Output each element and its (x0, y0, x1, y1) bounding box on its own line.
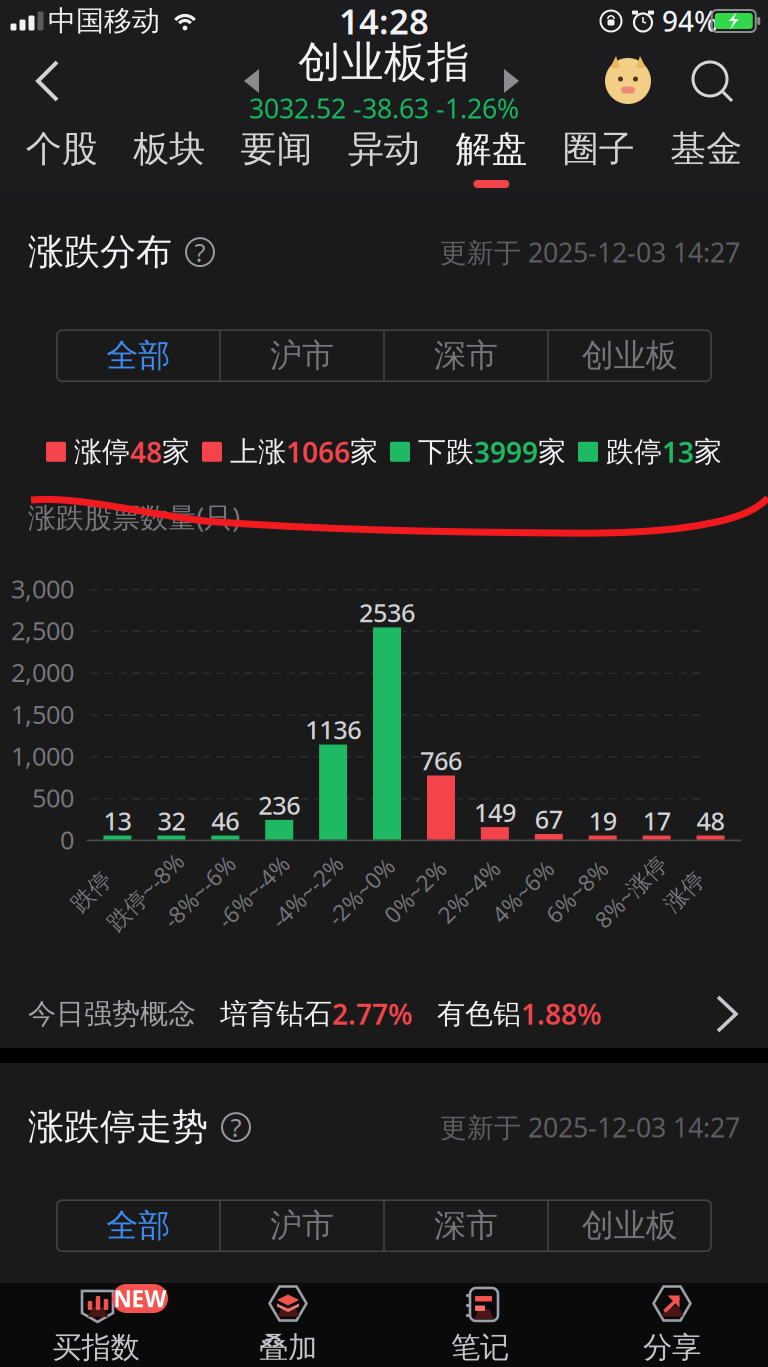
button[interactable]: 创业板 (549, 1200, 711, 1251)
staticText: 创业板 (582, 336, 678, 375)
staticText: 跌停 (68, 878, 114, 905)
staticText: 48 (130, 433, 162, 470)
staticText: 更新于 2025-12-03 14:27 (440, 234, 740, 270)
button[interactable]: NEW (0, 1283, 192, 1367)
staticText: 笔记 (451, 1329, 509, 1365)
staticText: 家 (162, 435, 190, 469)
staticText: -2%~0% (319, 876, 403, 907)
staticText: 67 (535, 802, 563, 836)
staticText: 13 (103, 804, 131, 837)
button[interactable]: 沪市 (221, 330, 383, 381)
button[interactable]: 返回 (8, 42, 86, 120)
staticText: 个股 (26, 127, 98, 171)
staticText: 下跌 (418, 435, 474, 469)
staticText: 异动 (348, 127, 420, 171)
staticText: 买指数 (52, 1329, 139, 1365)
staticText: 板块 (133, 127, 205, 171)
staticText: 上涨 (230, 435, 286, 469)
staticText: 家 (538, 435, 566, 469)
staticText: 基金 (670, 127, 742, 171)
staticText: 766 (420, 744, 462, 777)
staticText: 17 (643, 804, 671, 837)
button[interactable]: 深市 (385, 330, 547, 381)
staticText: ? (194, 235, 205, 269)
staticText: 圈子 (563, 127, 635, 171)
staticText: 1,000 (11, 739, 74, 773)
staticText: 19 (589, 804, 617, 837)
staticText: 家 (350, 435, 378, 469)
staticText: 8%~涨停 (585, 876, 676, 907)
button[interactable]: 叠加 (192, 1283, 384, 1367)
staticText: 深市 (434, 1206, 498, 1245)
staticText: 1136 (305, 713, 361, 746)
staticText: 深市 (434, 336, 498, 375)
staticText: 32 (157, 804, 185, 837)
staticText: 跌停 (606, 435, 662, 469)
staticText: -4%~-2% (262, 876, 353, 907)
staticText: 家 (694, 435, 722, 469)
staticText: 3032.52 -38.63 -1.26% (249, 90, 519, 126)
button[interactable]: 要闻 (223, 120, 330, 196)
staticText: 涨停 (661, 878, 707, 905)
staticText: 6%~8% (538, 876, 615, 907)
button[interactable]: 全部 (57, 1200, 219, 1251)
staticText: 13 (662, 433, 694, 470)
button[interactable]: 全部 (57, 330, 219, 381)
staticText: 3,000 (11, 572, 74, 605)
staticText: 48 (696, 804, 724, 837)
staticText: 0%~2% (376, 876, 453, 907)
staticText: 涨跌停走势 (28, 1105, 208, 1149)
staticText: 涨跌股票数量(只) (28, 498, 240, 536)
staticText: 2%~4% (430, 876, 507, 907)
staticText: 149 (474, 795, 516, 829)
button[interactable]: 创业板 (549, 330, 711, 381)
button[interactable]: 深市 (385, 1200, 547, 1251)
staticText: 更新于 2025-12-03 14:27 (440, 1109, 740, 1145)
button[interactable]: 今日强势概念 (0, 980, 768, 1048)
button[interactable]: 上一个 (224, 51, 280, 111)
staticText: 解盘 (455, 127, 527, 171)
staticText: 要闻 (241, 127, 313, 171)
staticText: ? (230, 1110, 241, 1144)
staticText: 沪市 (270, 1206, 334, 1245)
staticText: 沪市 (270, 336, 334, 375)
button[interactable]: 沪市 (221, 1200, 383, 1251)
button[interactable]: 搜索 (676, 42, 748, 120)
staticText: 2,000 (11, 655, 74, 689)
staticText: 3999 (474, 433, 538, 470)
staticText: 2,500 (11, 614, 74, 647)
staticText: 4%~6% (484, 876, 561, 907)
staticText: 中国移动 (48, 4, 160, 38)
button[interactable]: 个股 (8, 120, 115, 196)
button[interactable]: 下一个 (483, 51, 539, 111)
staticText: 94% (662, 2, 718, 40)
staticText: 有色铝 (437, 997, 521, 1031)
button[interactable]: 基金 (653, 120, 760, 196)
staticText: 1066 (286, 433, 350, 470)
staticText: 叠加 (259, 1329, 317, 1365)
staticText: 2.77% (332, 995, 413, 1033)
staticText: 涨停 (74, 435, 130, 469)
staticText: 今日强势概念 (28, 997, 196, 1031)
button[interactable]: 解盘 (438, 120, 545, 196)
staticText: 培育钻石 (220, 997, 332, 1031)
staticText: 跌停~-8% (96, 876, 194, 907)
button[interactable]: 板块 (115, 120, 223, 196)
staticText: 全部 (106, 1206, 170, 1245)
staticText: 创业板 (582, 1206, 678, 1245)
staticText: 236 (258, 788, 300, 822)
staticText: 46 (211, 804, 239, 837)
staticText: 创业板指 (298, 36, 470, 88)
staticText: 500 (32, 781, 74, 814)
staticText: -8%~-6% (154, 876, 245, 907)
staticText: -6%~-4% (208, 876, 299, 907)
staticText: 全部 (106, 336, 170, 375)
button[interactable]: 异动 (330, 120, 438, 196)
button[interactable]: 笔记 (384, 1283, 576, 1367)
button[interactable]: 圈子 (545, 120, 652, 196)
staticText: NEW (113, 1283, 166, 1313)
staticText: 0 (60, 823, 74, 856)
staticText: 2536 (359, 596, 415, 629)
button[interactable]: 分享 (576, 1283, 768, 1367)
button[interactable]: 用户头像 (590, 42, 666, 120)
